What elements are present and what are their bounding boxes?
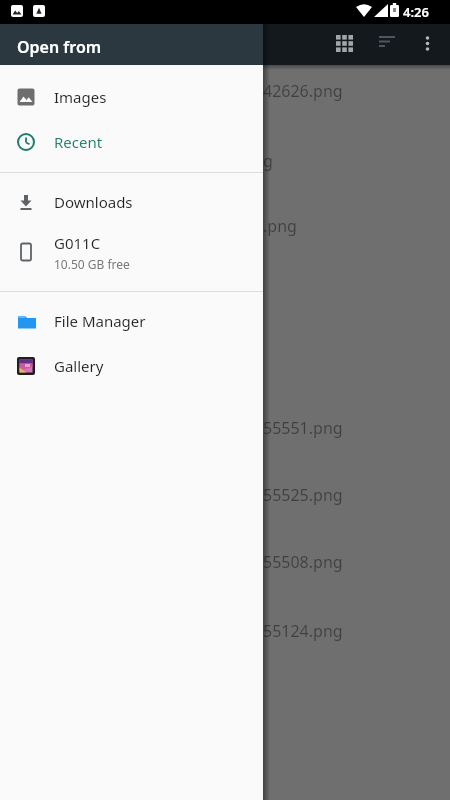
staticText: 55525.png (263, 484, 343, 506)
button[interactable]: Downloads (0, 179, 263, 224)
staticText: 10.50 GB free (54, 256, 130, 272)
button[interactable]: Recent (0, 119, 263, 164)
staticText: Open from (17, 36, 102, 58)
staticText: g (263, 150, 273, 172)
staticText: .png (263, 215, 297, 237)
staticText: 4:26 (403, 3, 429, 21)
staticText: Gallery (54, 356, 104, 376)
button[interactable]: Images (0, 74, 263, 119)
staticText: 55508.png (263, 551, 343, 573)
staticText: 55551.png (263, 417, 343, 439)
staticText: File Manager (54, 311, 146, 331)
button[interactable] (336, 35, 354, 52)
staticText: 42626.png (263, 80, 343, 102)
button[interactable] (423, 35, 432, 52)
staticText: 55124.png (263, 620, 343, 642)
staticText: G011C (54, 233, 101, 253)
staticText: Recent (54, 132, 103, 152)
button[interactable] (379, 36, 396, 47)
staticText: Downloads (54, 192, 133, 212)
button[interactable]: G011C (0, 224, 263, 280)
staticText: Images (54, 87, 107, 107)
button[interactable]: File Manager (0, 298, 263, 343)
button[interactable]: Gallery (0, 343, 263, 388)
